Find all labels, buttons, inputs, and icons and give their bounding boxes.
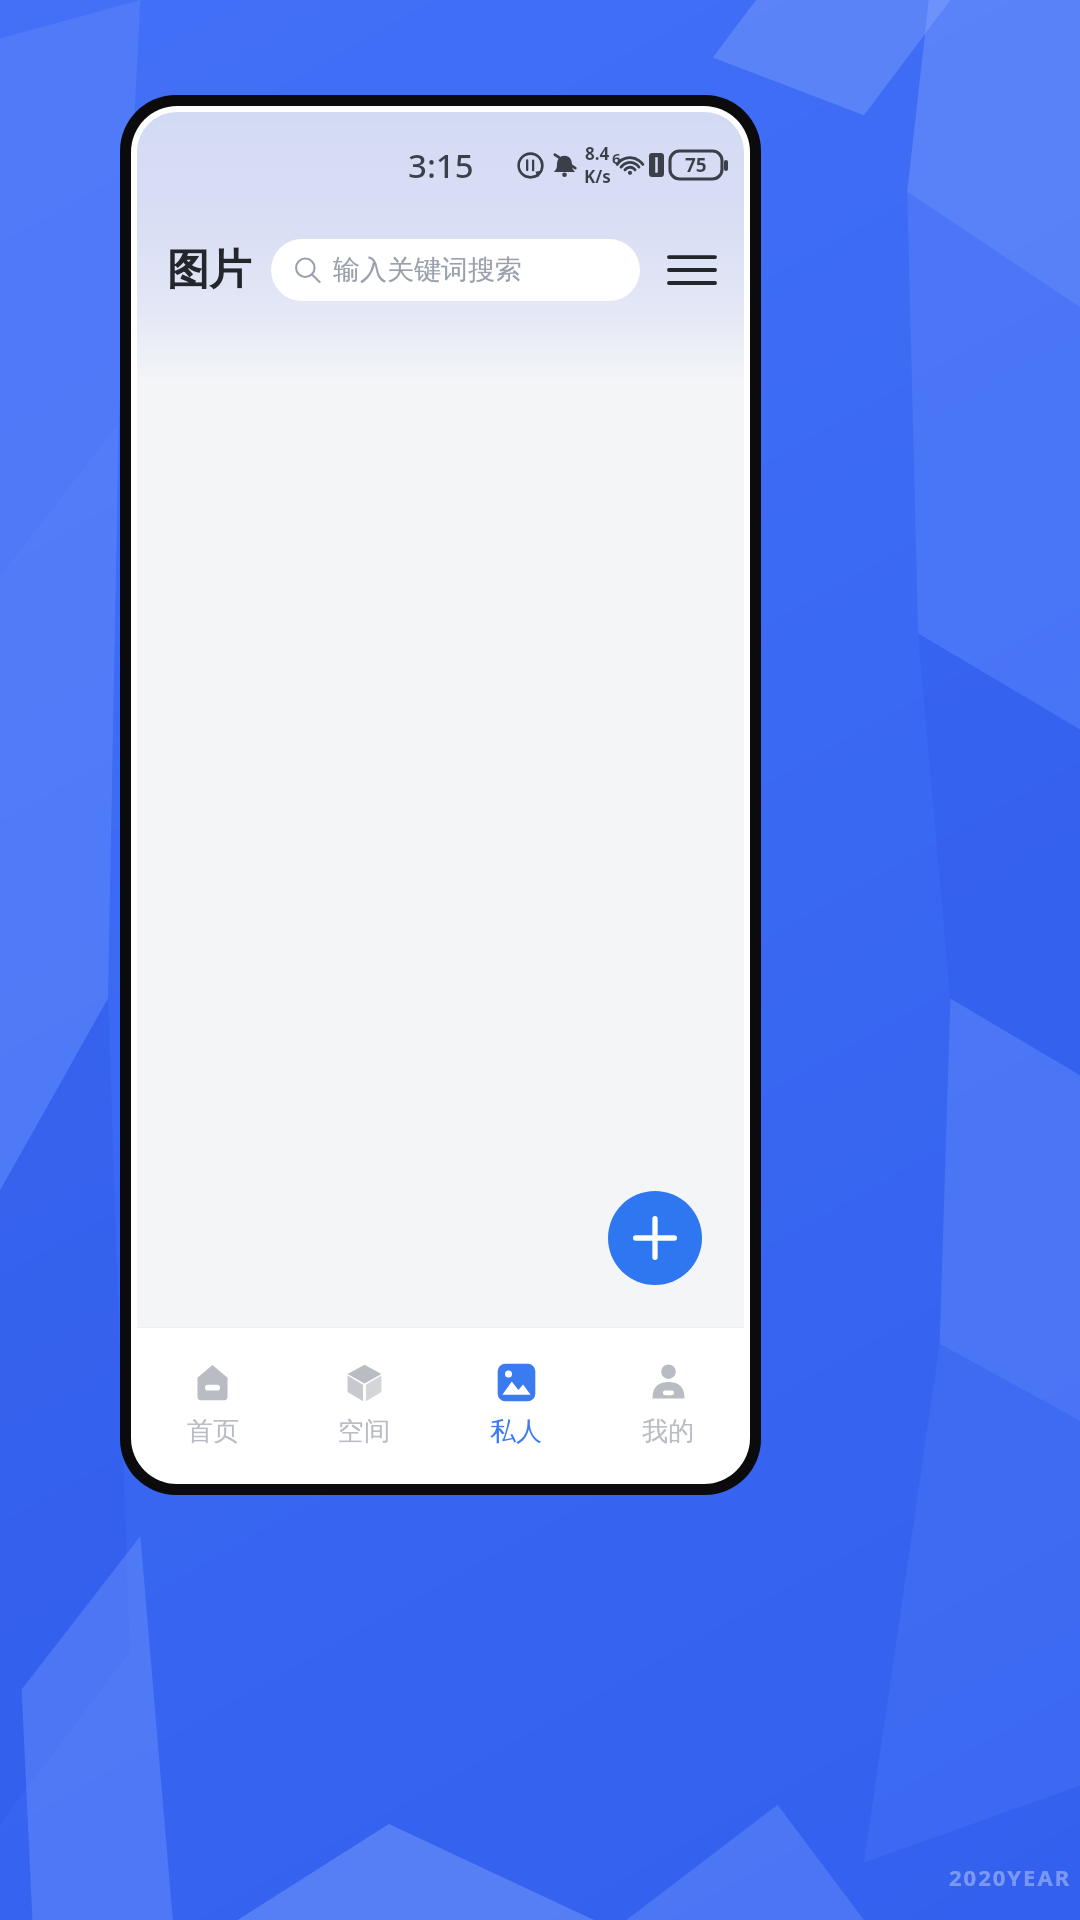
staticText: 输入关键词搜索 (333, 253, 522, 287)
button[interactable]: 私人 (440, 1328, 592, 1478)
staticText: 空间 (338, 1415, 390, 1448)
button[interactable]: 图片 (167, 244, 251, 297)
button[interactable]: 空间 (288, 1328, 440, 1478)
staticText: 8.4 (585, 142, 610, 165)
staticText: 6 (612, 148, 621, 168)
button[interactable]: Add (608, 1191, 702, 1285)
button[interactable]: 首页 (137, 1328, 288, 1478)
button[interactable]: 输入关键词搜索 (271, 239, 640, 301)
staticText: 3:15 (408, 143, 474, 188)
button[interactable]: Menu (664, 242, 720, 298)
staticText: 我的 (642, 1415, 694, 1448)
staticText: 75 (685, 152, 707, 178)
staticText: 2020YEAR (949, 1862, 1072, 1892)
staticText: K/s (584, 165, 611, 188)
staticText: 首页 (187, 1415, 239, 1448)
button[interactable]: 我的 (592, 1328, 744, 1478)
staticText: 私人 (490, 1415, 542, 1448)
